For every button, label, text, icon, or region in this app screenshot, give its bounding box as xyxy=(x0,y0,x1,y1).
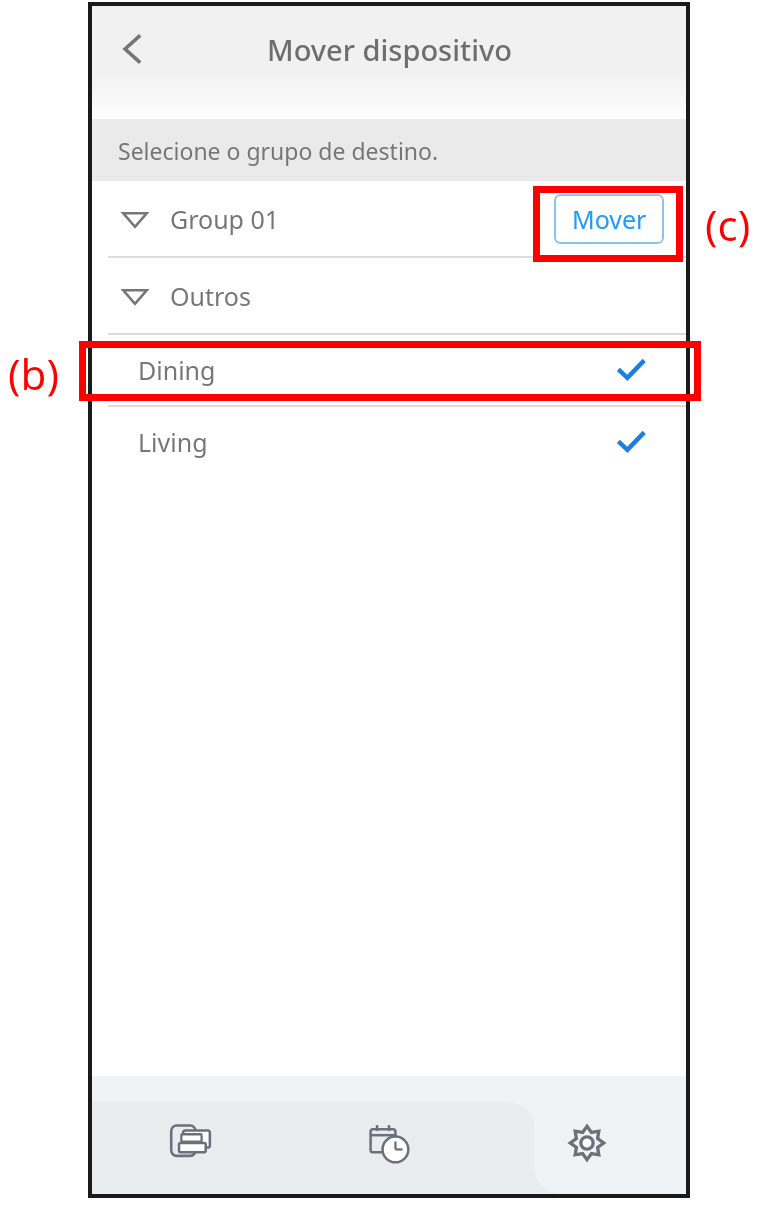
button[interactable]: Devices xyxy=(92,1076,290,1194)
staticText: Group 01 xyxy=(170,202,280,236)
button[interactable]: Schedule xyxy=(290,1076,488,1194)
button[interactable]: Outros xyxy=(92,258,686,333)
button[interactable]: Dining xyxy=(92,335,686,405)
button[interactable]: Living xyxy=(92,407,686,477)
staticText: (b) xyxy=(8,345,60,402)
button[interactable]: Group 01 xyxy=(92,181,686,256)
staticText: Dining xyxy=(138,353,216,387)
staticText: Selecione o grupo de destino. xyxy=(118,135,439,166)
button[interactable]: Mover xyxy=(554,194,664,244)
staticText: Outros xyxy=(170,279,251,313)
button[interactable]: Settings xyxy=(488,1076,686,1194)
staticText: (c) xyxy=(705,196,751,253)
staticText: Mover xyxy=(572,202,647,236)
button[interactable]: Back xyxy=(96,12,170,86)
staticText: Living xyxy=(138,425,208,459)
staticText: Mover dispositivo xyxy=(267,30,512,69)
